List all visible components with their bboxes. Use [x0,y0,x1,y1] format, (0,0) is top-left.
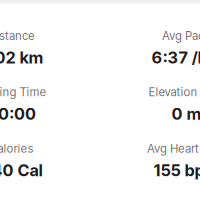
staticText: 155 bpm [153,160,200,180]
button[interactable]: Calories [0,142,99,180]
button[interactable]: Distance [0,29,99,67]
staticText: 340 Cal [0,160,42,180]
button[interactable]: Avg Heart Rate [99,142,200,180]
staticText: Distance [0,29,35,43]
button[interactable]: Elevation Gain [99,85,200,124]
button[interactable]: Avg Pace [99,29,200,67]
staticText: 30:00 [0,104,36,124]
staticText: 0 m [171,104,200,124]
staticText: 6:37 /km [151,48,200,67]
staticText: Moving Time [0,85,46,99]
staticText: Avg Heart Rate [147,142,200,155]
staticText: Elevation Gain [148,85,200,99]
button[interactable]: Moving Time [0,85,99,124]
staticText: 5.02 km [0,48,43,67]
staticText: Avg Pace [162,29,200,43]
staticText: Calories [0,142,33,155]
